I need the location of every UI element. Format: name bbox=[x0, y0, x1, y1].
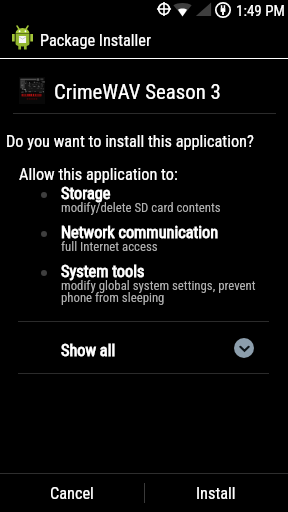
other: Expand permissions bbox=[234, 338, 254, 358]
staticText: 1:49 PM bbox=[236, 2, 285, 20]
staticText: modify/delete SD card contents bbox=[61, 200, 221, 215]
button[interactable]: Cancel bbox=[0, 474, 144, 512]
staticText: Show all bbox=[61, 341, 116, 360]
staticText: full Internet access bbox=[61, 239, 158, 254]
staticText: Package Installer bbox=[40, 31, 151, 50]
staticText: Allow this application to: bbox=[19, 165, 178, 184]
staticText: modify global system settings, prevent p… bbox=[61, 278, 256, 305]
staticText: CrimeWAV Season 3 bbox=[54, 80, 221, 104]
staticText: Storage bbox=[61, 184, 111, 203]
staticText: System tools bbox=[61, 262, 145, 281]
button[interactable]: Install bbox=[144, 474, 288, 512]
staticText: Cancel bbox=[50, 484, 94, 503]
staticText: Install bbox=[196, 484, 236, 503]
staticText: Do you want to install this application? bbox=[6, 132, 254, 151]
staticText: Network communication bbox=[61, 223, 219, 242]
button[interactable]: Show all bbox=[0, 322, 288, 373]
